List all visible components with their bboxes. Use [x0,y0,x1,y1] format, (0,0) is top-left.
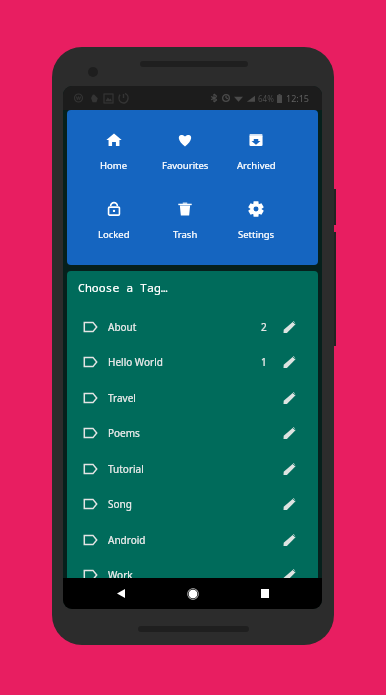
staticText: Poems [108,426,140,440]
button[interactable]: Back [97,578,145,609]
button[interactable]: Home [169,578,217,609]
staticText: Choose a Tag… [78,280,168,296]
staticText: Work [108,568,133,578]
button[interactable]: Settings [220,187,292,243]
staticText: Archived [237,159,276,172]
button[interactable]: About [67,309,318,345]
staticText: Android [108,533,146,547]
button[interactable]: Song [67,486,318,522]
staticText: About [108,320,137,334]
button[interactable]: Locked [78,187,150,243]
button[interactable]: Travel [67,380,318,416]
staticText: Travel [108,391,136,405]
staticText: Home [100,159,128,172]
staticText: Settings [238,228,275,241]
staticText: Locked [98,228,130,241]
staticText: 2 [261,320,267,334]
staticText: 64% [258,93,274,104]
button[interactable]: Android [67,522,318,558]
staticText: Trash [173,228,198,241]
button[interactable]: Home [78,118,150,174]
staticText: 1 [261,355,267,369]
button[interactable]: Tutorial [67,451,318,487]
staticText: Song [108,497,132,511]
button[interactable]: Trash [149,187,221,243]
button[interactable]: Recent apps [241,578,289,609]
staticText: 12:15 [286,92,310,104]
button[interactable]: Poems [67,415,318,451]
staticText: Favourites [162,159,209,172]
button[interactable]: Hello World [67,344,318,380]
button[interactable]: Work [67,557,318,578]
button[interactable]: Favourites [149,118,221,174]
button[interactable]: Archived [220,118,292,174]
staticText: Hello World [108,355,163,369]
staticText: Tutorial [108,462,144,476]
